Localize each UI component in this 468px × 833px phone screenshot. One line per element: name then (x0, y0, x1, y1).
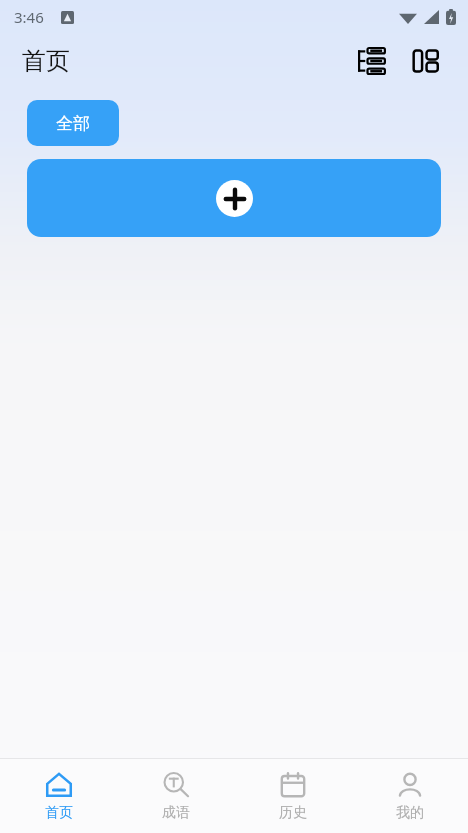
button[interactable]: Add (27, 159, 441, 237)
staticText: 首页 (22, 46, 70, 76)
staticText: 成语 (162, 804, 190, 822)
button[interactable]: List view (352, 41, 392, 81)
button[interactable]: 全部 (27, 100, 119, 146)
staticText: 3:46 (14, 7, 44, 27)
button[interactable]: Grid view (406, 41, 446, 81)
staticText: 全部 (56, 113, 90, 134)
button[interactable]: 成语 (117, 759, 234, 833)
button[interactable]: 首页 (0, 759, 117, 833)
button[interactable]: 历史 (234, 759, 351, 833)
button[interactable]: 我的 (351, 759, 468, 833)
staticText: 历史 (279, 804, 307, 822)
staticText: 首页 (45, 804, 73, 822)
staticText: 我的 (396, 804, 424, 822)
